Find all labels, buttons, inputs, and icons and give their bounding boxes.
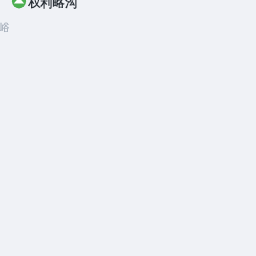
staticText: 权利略沟 [28,0,78,9]
staticText: 峪 [0,21,10,34]
button[interactable]: Contact avatar [0,0,256,14]
other: Contact avatar [0,0,28,12]
